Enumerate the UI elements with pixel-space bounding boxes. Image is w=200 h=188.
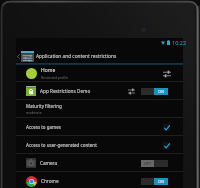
- button[interactable]: OFF: [141, 160, 168, 167]
- button[interactable]: Profile settings: [162, 69, 172, 79]
- button[interactable]: Camera: [16, 154, 183, 172]
- button[interactable]: Application and content restrictions: [16, 47, 183, 65]
- button[interactable]: ON: [141, 88, 168, 95]
- staticText: 10:22: [172, 39, 187, 46]
- button[interactable]: Home: [16, 65, 183, 82]
- staticText: OFF: [144, 161, 152, 166]
- staticText: Restricted profile: [41, 75, 69, 80]
- staticText: ON: [158, 89, 165, 94]
- button[interactable]: App settings: [127, 87, 136, 96]
- staticText: App Restrictions Demo: [40, 88, 91, 94]
- staticText: ON: [158, 179, 165, 184]
- button[interactable]: Access to games: [16, 118, 183, 136]
- staticText: Access to user-generated content: [26, 142, 97, 148]
- staticText: Chrome: [41, 178, 59, 184]
- button[interactable]: ON: [141, 178, 168, 185]
- staticText: Access to games: [26, 124, 61, 130]
- staticText: Application and content restrictions: [36, 53, 117, 60]
- staticText: Home: [41, 67, 56, 74]
- staticText: moderate: [26, 110, 42, 115]
- button[interactable]: App Restrictions Demo: [16, 82, 183, 100]
- button[interactable]: Chrome: [16, 172, 183, 188]
- button[interactable]: Access to user-generated content: [16, 136, 183, 154]
- staticText: Camera: [40, 160, 58, 166]
- staticText: Maturity filtering: [26, 103, 62, 109]
- button[interactable]: Maturity filtering: [16, 100, 183, 118]
